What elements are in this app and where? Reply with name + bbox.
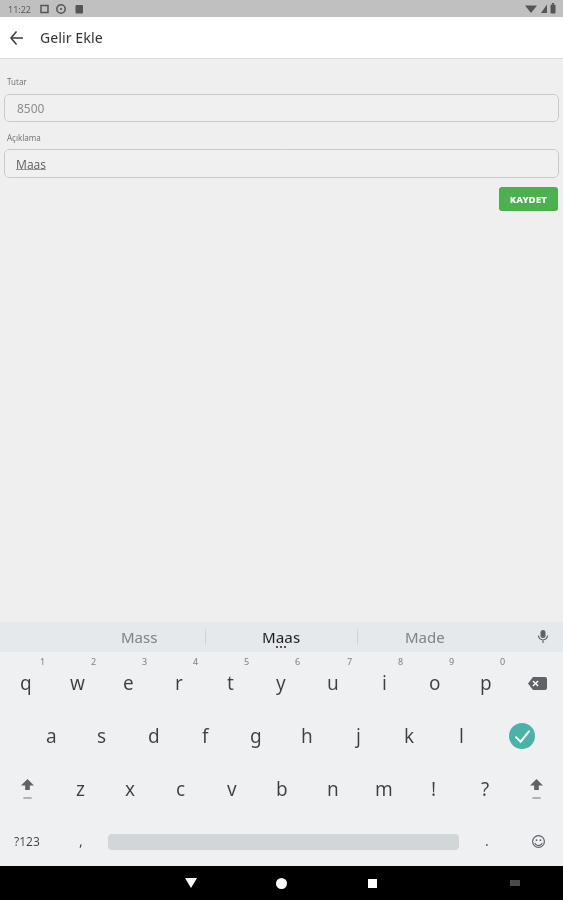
staticText: u <box>327 670 339 696</box>
button[interactable] <box>526 829 550 853</box>
staticText: Tutar <box>7 76 27 87</box>
staticText: w <box>70 670 85 696</box>
staticText: m <box>375 776 393 802</box>
staticText: x <box>125 776 136 802</box>
staticText: 7 <box>347 655 353 667</box>
staticText: 6 <box>295 655 301 667</box>
staticText: j <box>356 723 361 749</box>
button[interactable]: y <box>258 667 304 699</box>
button[interactable] <box>521 671 553 695</box>
button[interactable]: c <box>158 773 204 805</box>
staticText: t <box>227 670 234 696</box>
staticText: ! <box>431 776 437 802</box>
staticText: KAYDET <box>510 193 548 205</box>
staticText: l <box>459 723 464 749</box>
staticText: y <box>276 670 286 696</box>
staticText: s <box>97 723 107 749</box>
button[interactable]: n <box>310 773 356 805</box>
button[interactable] <box>520 773 552 805</box>
button[interactable]: o <box>412 667 458 699</box>
staticText: h <box>301 723 313 749</box>
button[interactable]: m <box>361 773 407 805</box>
staticText: 2 <box>91 655 97 667</box>
button[interactable]: KAYDET <box>499 187 558 211</box>
button[interactable]: Made <box>358 622 492 652</box>
staticText: 5 <box>244 655 250 667</box>
button[interactable]: w <box>54 667 100 699</box>
staticText: r <box>175 670 183 696</box>
staticText: Maas <box>262 627 301 647</box>
staticText: p <box>480 670 492 696</box>
button[interactable]: v <box>209 773 255 805</box>
staticText: ?123 <box>14 833 40 849</box>
button[interactable]: ? <box>462 773 508 805</box>
staticText: 0 <box>500 655 506 667</box>
staticText: v <box>227 776 237 802</box>
button[interactable]: Maas <box>4 149 559 178</box>
staticText: n <box>327 776 339 802</box>
button[interactable]: , <box>58 824 104 856</box>
button[interactable]: l <box>438 720 484 752</box>
staticText: 11:22 <box>8 3 32 15</box>
button[interactable]: f <box>182 720 228 752</box>
staticText: , <box>79 831 83 850</box>
staticText: 8 <box>398 655 404 667</box>
button[interactable]: q <box>3 667 49 699</box>
button[interactable]: ! <box>411 773 457 805</box>
staticText: 4 <box>193 655 199 667</box>
button[interactable] <box>509 723 535 749</box>
staticText: Gelir Ekle <box>40 28 103 47</box>
button[interactable]: a <box>28 720 74 752</box>
button[interactable]: t <box>207 667 253 699</box>
button[interactable] <box>355 866 389 900</box>
staticText: Made <box>405 627 445 647</box>
button[interactable]: s <box>79 720 125 752</box>
staticText: d <box>148 723 160 749</box>
staticText: 1 <box>40 655 46 667</box>
staticText: e <box>123 670 134 696</box>
button[interactable]: z <box>57 773 103 805</box>
staticText: f <box>202 723 209 749</box>
button[interactable] <box>11 773 43 805</box>
button[interactable] <box>174 866 208 900</box>
staticText: z <box>76 776 85 802</box>
button[interactable]: ?123 <box>4 825 50 857</box>
staticText: q <box>20 670 32 696</box>
staticText: Mass <box>121 627 158 647</box>
staticText: Maas <box>16 156 47 172</box>
staticText: c <box>176 776 186 802</box>
staticText: g <box>250 723 262 749</box>
button[interactable] <box>0 17 34 58</box>
staticText: 9 <box>449 655 455 667</box>
button[interactable]: k <box>386 720 432 752</box>
staticText: Açıklama <box>7 132 41 143</box>
staticText: . <box>485 831 489 850</box>
button[interactable]: r <box>156 667 202 699</box>
staticText: o <box>429 670 441 696</box>
button[interactable]: g <box>233 720 279 752</box>
button[interactable] <box>264 866 298 900</box>
staticText: ? <box>481 776 490 802</box>
button[interactable]: j <box>335 720 381 752</box>
button[interactable]: Mass <box>68 622 210 652</box>
button[interactable]: x <box>107 773 153 805</box>
button[interactable]: . <box>464 824 510 856</box>
button[interactable]: b <box>259 773 305 805</box>
button[interactable]: 8500 <box>4 94 559 122</box>
staticText: i <box>382 670 387 696</box>
staticText: a <box>46 723 57 749</box>
button[interactable]: u <box>310 667 356 699</box>
button[interactable]: e <box>105 667 151 699</box>
button[interactable]: p <box>463 667 509 699</box>
staticText: k <box>404 723 415 749</box>
staticText: b <box>276 776 288 802</box>
button[interactable]: Maas <box>206 622 357 652</box>
button[interactable]: d <box>131 720 177 752</box>
button[interactable]: h <box>284 720 330 752</box>
button[interactable]: i <box>361 667 407 699</box>
staticText: 3 <box>142 655 148 667</box>
staticText: 8500 <box>17 100 45 116</box>
